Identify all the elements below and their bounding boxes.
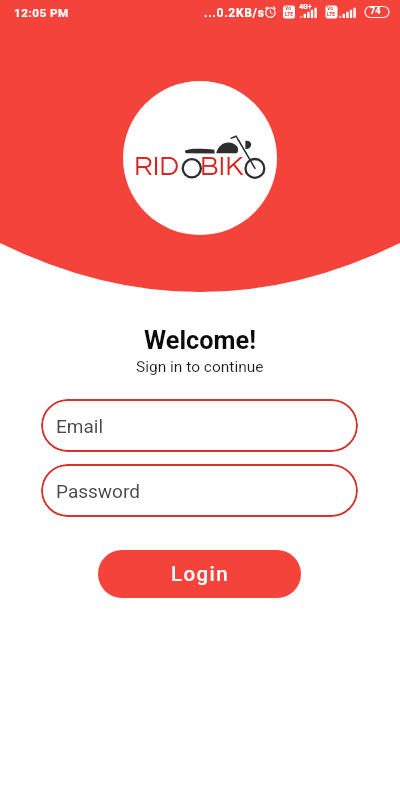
button[interactable]: Email — [41, 399, 358, 452]
staticText: 4G+ — [299, 3, 312, 11]
staticText: 74 — [370, 6, 381, 17]
button[interactable]: Password — [41, 464, 358, 517]
staticText: ...0.2KB/s — [204, 6, 265, 20]
staticText: Email — [56, 415, 104, 437]
button[interactable]: Login — [98, 550, 301, 598]
staticText: Login — [171, 562, 229, 586]
staticText: Welcome! — [144, 326, 256, 356]
staticText: Vo LTE — [285, 5, 294, 17]
staticText: Vo LTE — [327, 5, 336, 17]
staticText: RID — [134, 152, 180, 181]
staticText: Password — [56, 480, 140, 502]
other: RidoBiko logo — [123, 81, 277, 235]
staticText: BIK — [200, 152, 244, 181]
staticText: 12:05 PM — [14, 6, 69, 20]
staticText: Sign in to continue — [136, 358, 264, 376]
